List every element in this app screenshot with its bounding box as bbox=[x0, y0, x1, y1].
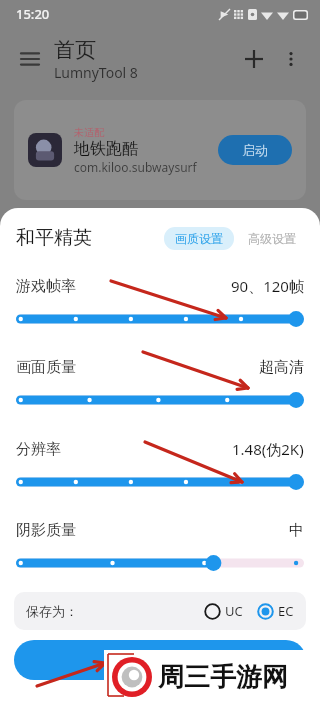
staticText: 游戏帧率 bbox=[16, 277, 76, 296]
staticText: 15:20 bbox=[16, 5, 50, 23]
button[interactable]: Slider bbox=[16, 554, 304, 572]
staticText: 超高清 bbox=[259, 358, 304, 377]
staticText: UC bbox=[225, 602, 243, 620]
button[interactable]: Slider bbox=[16, 473, 304, 491]
staticText: com.kiloo.subwaysurf bbox=[74, 159, 197, 175]
staticText: 未适配 bbox=[74, 126, 104, 139]
button[interactable]: More options bbox=[274, 42, 308, 76]
button[interactable]: 画质设置 bbox=[164, 227, 234, 250]
staticText: 90、120帧 bbox=[231, 276, 304, 296]
staticText: 高级设置 bbox=[248, 231, 296, 246]
staticText: 分辨率 bbox=[16, 440, 61, 459]
staticText: 周三手游网 bbox=[158, 661, 288, 694]
button[interactable]: Add bbox=[234, 39, 274, 79]
staticText: 地铁跑酷 bbox=[74, 139, 138, 159]
staticText: EC bbox=[278, 602, 294, 620]
button[interactable]: 高级设置 bbox=[240, 227, 304, 250]
staticText: LumnyTool 8 bbox=[54, 63, 138, 82]
button[interactable]: Menu bbox=[12, 41, 48, 77]
staticText: 首页 bbox=[54, 37, 96, 63]
button[interactable]: Slider bbox=[16, 391, 304, 409]
button[interactable]: 未适配 bbox=[14, 100, 306, 200]
staticText: 中 bbox=[289, 521, 304, 540]
staticText: 画面质量 bbox=[16, 358, 76, 377]
staticText: 1.48(伪2K) bbox=[232, 439, 304, 459]
staticText: 画质设置 bbox=[175, 231, 223, 246]
staticText: 和平精英 bbox=[16, 226, 92, 250]
button[interactable]: EC bbox=[257, 602, 294, 620]
button[interactable]: Slider bbox=[16, 310, 304, 328]
staticText: 保存为： bbox=[26, 603, 78, 619]
button[interactable]: 启动 bbox=[218, 135, 292, 165]
staticText: 启动 bbox=[242, 142, 268, 158]
button[interactable]: Apply bbox=[14, 640, 306, 680]
button[interactable]: UC bbox=[204, 602, 243, 620]
staticText: 阴影质量 bbox=[16, 521, 76, 540]
